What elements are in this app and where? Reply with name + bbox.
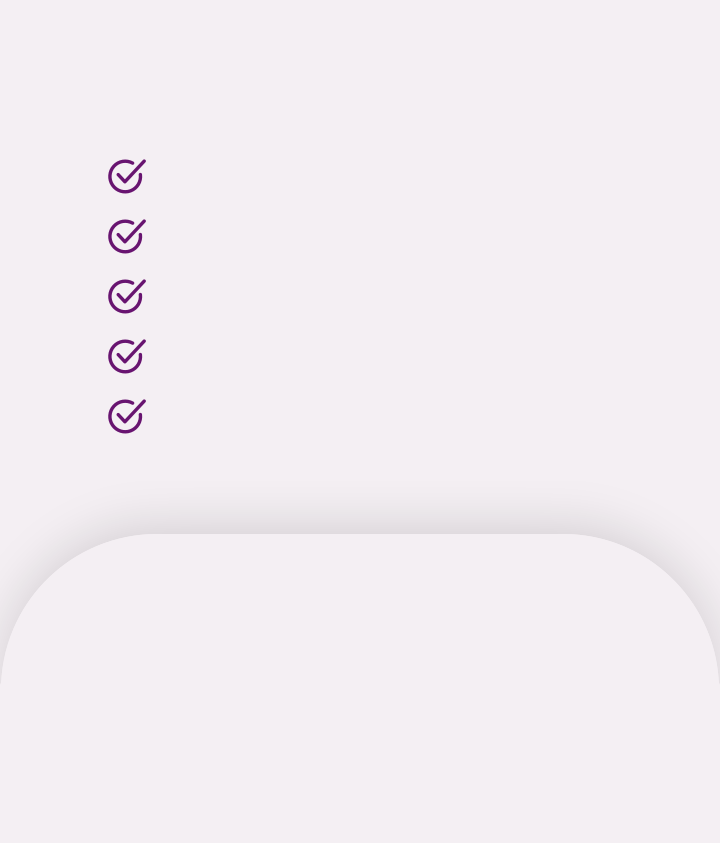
button[interactable]: Completed item 4: [104, 336, 148, 380]
button[interactable]: Completed item 2: [104, 216, 148, 260]
button[interactable]: Completed item 3: [104, 276, 148, 320]
button[interactable]: Completed item 1: [104, 156, 148, 200]
button[interactable]: Completed item 5: [104, 396, 148, 440]
